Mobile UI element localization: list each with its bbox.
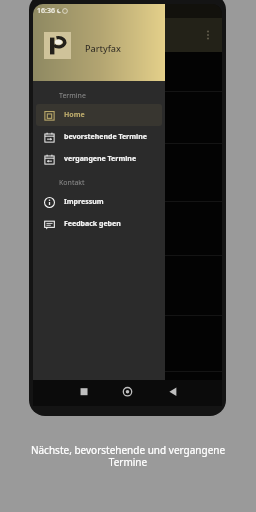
staticText: Westerham chenrain (35, 163, 73, 183)
staticText: Partyfax (85, 42, 121, 54)
staticText: 16:36 (37, 6, 55, 16)
staticText: Feedback geben (64, 219, 121, 229)
button[interactable]: Home (36, 104, 162, 126)
staticText: bevorstehende Termine (64, 132, 147, 142)
button[interactable]: Weitere Optionen (198, 25, 218, 45)
button[interactable]: Feedback geben (36, 213, 162, 235)
button[interactable]: Impressum (36, 191, 162, 213)
staticText: Nächste, bevorstehende und vergangene Te… (0, 443, 256, 469)
staticText: Termine (59, 91, 86, 101)
button[interactable]: vergangene Termine (36, 148, 162, 170)
button[interactable]: bevorstehende Termine (36, 126, 162, 148)
staticText: Home (64, 110, 85, 120)
staticText: vergangene Termine (64, 154, 137, 164)
staticText: ar Bier (35, 67, 62, 78)
staticText: Kontakt (59, 178, 85, 188)
staticText: Impressum (64, 197, 104, 207)
